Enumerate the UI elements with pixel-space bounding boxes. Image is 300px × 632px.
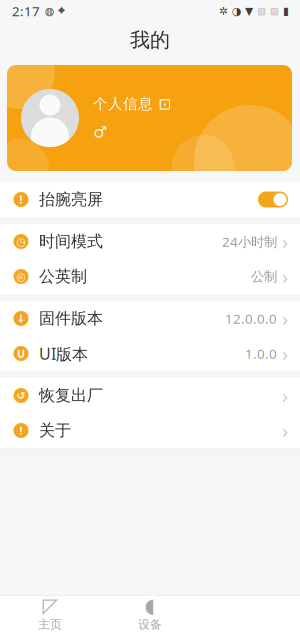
staticText: 关于 [39, 421, 71, 440]
staticText: › [282, 340, 288, 367]
staticText: ◎ [16, 270, 25, 282]
button[interactable]: ↺ [0, 378, 300, 413]
button[interactable]: ◎ [0, 259, 300, 294]
staticText: 恢复出厂 [39, 386, 103, 405]
staticText: ♂ [93, 123, 107, 141]
button[interactable]: ! [0, 413, 300, 448]
staticText: ✲ [219, 5, 228, 17]
staticText: 1.0.0 [245, 345, 277, 362]
staticText: ▨ [270, 6, 279, 16]
staticText: ⊡ [158, 95, 171, 113]
button[interactable]: ! [0, 182, 300, 217]
staticText: ◖ [144, 594, 155, 617]
staticText: ▼ [245, 5, 253, 17]
staticText: ↺ [16, 389, 25, 401]
button[interactable]: 个人信息 [0, 65, 300, 171]
staticText: 公英制 [39, 267, 87, 286]
staticText: ◑ [232, 5, 241, 17]
staticText: UI版本 [39, 343, 88, 364]
staticText: 时间模式 [39, 232, 103, 251]
staticText: › [282, 417, 288, 444]
staticText: ▨ [257, 6, 266, 16]
staticText: 24小时制 [222, 233, 277, 250]
staticText: ↓ [16, 312, 25, 324]
staticText: › [282, 382, 288, 409]
staticText: ! [19, 192, 22, 207]
staticText: 主页 [38, 617, 62, 632]
staticText: › [282, 228, 288, 255]
staticText: 我的 [130, 28, 170, 52]
staticText: 公制 [251, 268, 277, 285]
staticText: ◍ [45, 5, 54, 17]
staticText: ⌖ [58, 5, 65, 17]
button[interactable]: ◸ [0, 596, 100, 632]
staticText: › [282, 305, 288, 332]
staticText: U [17, 346, 25, 361]
staticText: ◷ [16, 235, 25, 247]
staticText: ▮ [283, 5, 289, 17]
button[interactable]: ◖ [100, 596, 200, 632]
staticText: 固件版本 [39, 309, 103, 328]
button[interactable]: ◷ [0, 224, 300, 259]
button[interactable]: ↓ [0, 301, 300, 336]
staticText: ◸ [42, 594, 57, 617]
staticText: 个人信息 [93, 95, 153, 113]
staticText: 2:17 [12, 2, 40, 20]
staticText: 抬腕亮屏 [39, 190, 103, 209]
button[interactable]: U [0, 336, 300, 371]
staticText: 设备 [138, 617, 162, 632]
staticText: ! [19, 423, 22, 438]
staticText: 12.0.0.0 [225, 310, 277, 327]
staticText: › [282, 263, 288, 290]
